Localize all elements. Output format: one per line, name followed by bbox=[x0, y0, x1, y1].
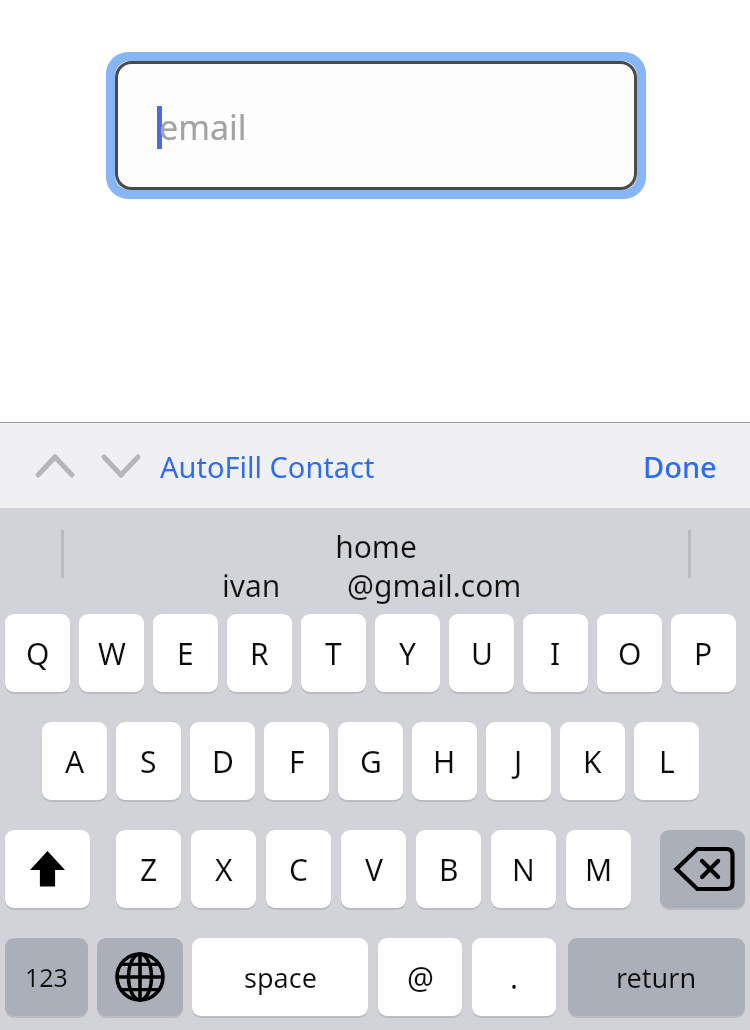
button[interactable]: @ bbox=[378, 938, 462, 1016]
button[interactable]: Y bbox=[375, 614, 440, 692]
button[interactable]: return bbox=[568, 938, 745, 1016]
staticText: Z bbox=[140, 849, 158, 890]
staticText: V bbox=[365, 849, 383, 890]
button[interactable]: S bbox=[116, 722, 181, 800]
staticText: C bbox=[289, 849, 308, 890]
staticText: @ bbox=[407, 957, 434, 998]
staticText: N bbox=[512, 849, 535, 890]
button[interactable]: V bbox=[341, 830, 406, 908]
staticText: space bbox=[244, 959, 317, 996]
button[interactable]: AutoFill Contact bbox=[160, 440, 390, 492]
staticText: Done bbox=[643, 447, 717, 486]
button[interactable]: I bbox=[523, 614, 588, 692]
staticText: T bbox=[325, 633, 342, 674]
button[interactable]: Z bbox=[116, 830, 181, 908]
button[interactable]: Change keyboard bbox=[97, 938, 183, 1016]
staticText: D bbox=[212, 741, 234, 782]
staticText: L bbox=[659, 741, 675, 782]
staticText: S bbox=[140, 741, 157, 782]
staticText: H bbox=[433, 741, 456, 782]
button[interactable]: Previous field bbox=[24, 440, 86, 492]
staticText: I bbox=[550, 633, 561, 674]
button[interactable]: E bbox=[153, 614, 218, 692]
staticText: R bbox=[250, 633, 269, 674]
button[interactable]: R bbox=[227, 614, 292, 692]
button[interactable]: Delete bbox=[660, 830, 745, 908]
staticText: AutoFill Contact bbox=[160, 447, 375, 486]
button[interactable]: A bbox=[42, 722, 107, 800]
staticText: U bbox=[471, 633, 493, 674]
button[interactable]: N bbox=[491, 830, 556, 908]
button[interactable]: Shift bbox=[5, 830, 90, 908]
button[interactable]: . bbox=[472, 938, 556, 1016]
staticText: 123 bbox=[25, 960, 68, 994]
staticText: A bbox=[65, 741, 85, 782]
button[interactable]: P bbox=[671, 614, 736, 692]
staticText: X bbox=[215, 849, 233, 890]
staticText: . bbox=[510, 957, 519, 998]
staticText: E bbox=[177, 633, 194, 674]
button[interactable]: H bbox=[412, 722, 477, 800]
button[interactable]: J bbox=[486, 722, 551, 800]
staticText: @gmail.com bbox=[347, 565, 522, 606]
staticText: G bbox=[360, 741, 382, 782]
staticText: W bbox=[98, 633, 126, 674]
button[interactable]: F bbox=[264, 722, 329, 800]
button[interactable]: T bbox=[301, 614, 366, 692]
button[interactable]: W bbox=[79, 614, 144, 692]
button[interactable]: C bbox=[266, 830, 331, 908]
button[interactable]: home bbox=[64, 510, 688, 606]
staticText: return bbox=[616, 959, 697, 996]
staticText: home bbox=[64, 526, 688, 566]
button[interactable]: space bbox=[192, 938, 368, 1016]
staticText: B bbox=[439, 849, 459, 890]
button[interactable]: 123 bbox=[5, 938, 88, 1016]
button[interactable]: Q bbox=[5, 614, 70, 692]
button[interactable]: X bbox=[191, 830, 256, 908]
button[interactable]: G bbox=[338, 722, 403, 800]
staticText: O bbox=[618, 633, 642, 674]
button[interactable]: O bbox=[597, 614, 662, 692]
staticText: email bbox=[159, 104, 247, 150]
button[interactable]: M bbox=[566, 830, 631, 908]
staticText: M bbox=[585, 849, 613, 890]
staticText: Y bbox=[399, 633, 416, 674]
button[interactable]: Next field bbox=[90, 440, 152, 492]
button[interactable]: U bbox=[449, 614, 514, 692]
staticText: K bbox=[583, 741, 602, 782]
staticText: P bbox=[694, 633, 713, 674]
button[interactable]: Done bbox=[630, 440, 730, 492]
staticText: Q bbox=[26, 633, 50, 674]
staticText: ivan bbox=[222, 565, 281, 606]
button[interactable]: D bbox=[190, 722, 255, 800]
button[interactable]: L bbox=[634, 722, 699, 800]
button[interactable]: B bbox=[416, 830, 481, 908]
button[interactable]: K bbox=[560, 722, 625, 800]
staticText: J bbox=[514, 741, 523, 782]
staticText: F bbox=[289, 741, 305, 782]
button[interactable]: email bbox=[106, 52, 646, 199]
